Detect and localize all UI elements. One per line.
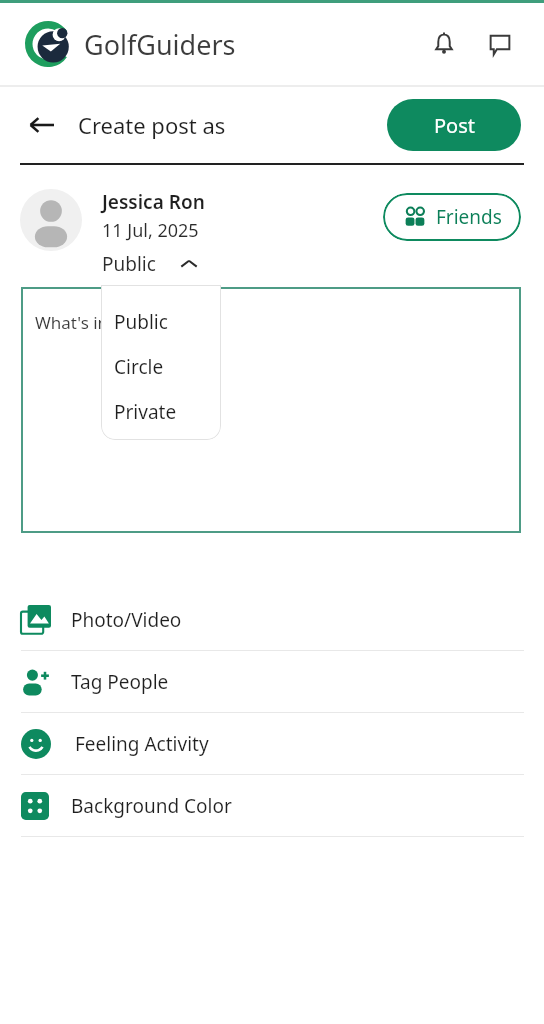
staticText: Photo/Video [71,607,182,633]
button[interactable]: Friends [383,193,521,241]
button[interactable]: Public [102,251,200,277]
staticText: Feeling Activity [75,731,209,757]
button[interactable]: Notifications [422,22,466,66]
staticText: Background Color [71,793,232,819]
staticText: Create post as [78,110,226,140]
staticText: Friends [436,204,502,230]
button[interactable]: Messages [478,22,522,66]
staticText: Post [434,112,475,139]
button[interactable]: GolfGuiders [22,18,236,70]
staticText: Tag People [71,669,169,695]
staticText: 11 Jul, 2025 [102,218,199,243]
staticText: What's in your mind? [35,311,203,334]
staticText: Public [114,309,168,335]
button[interactable]: Private [101,389,221,434]
button[interactable]: Background Color [0,775,544,836]
button[interactable]: Post [387,99,521,151]
button[interactable]: Back [20,103,64,147]
staticText: Public [102,251,156,277]
staticText: Circle [114,354,164,380]
button[interactable]: Photo/Video [0,589,544,650]
button[interactable]: Profile photo [20,189,82,251]
button[interactable]: Tag People [0,651,544,712]
staticText: Private [114,399,177,425]
staticText: Jessica Ron [102,189,205,215]
staticText: GolfGuiders [84,26,236,63]
button[interactable]: Public [101,299,221,344]
button[interactable]: Circle [101,344,221,389]
button[interactable]: What's in your mind? [21,287,521,533]
button[interactable]: Feeling Activity [0,713,544,774]
